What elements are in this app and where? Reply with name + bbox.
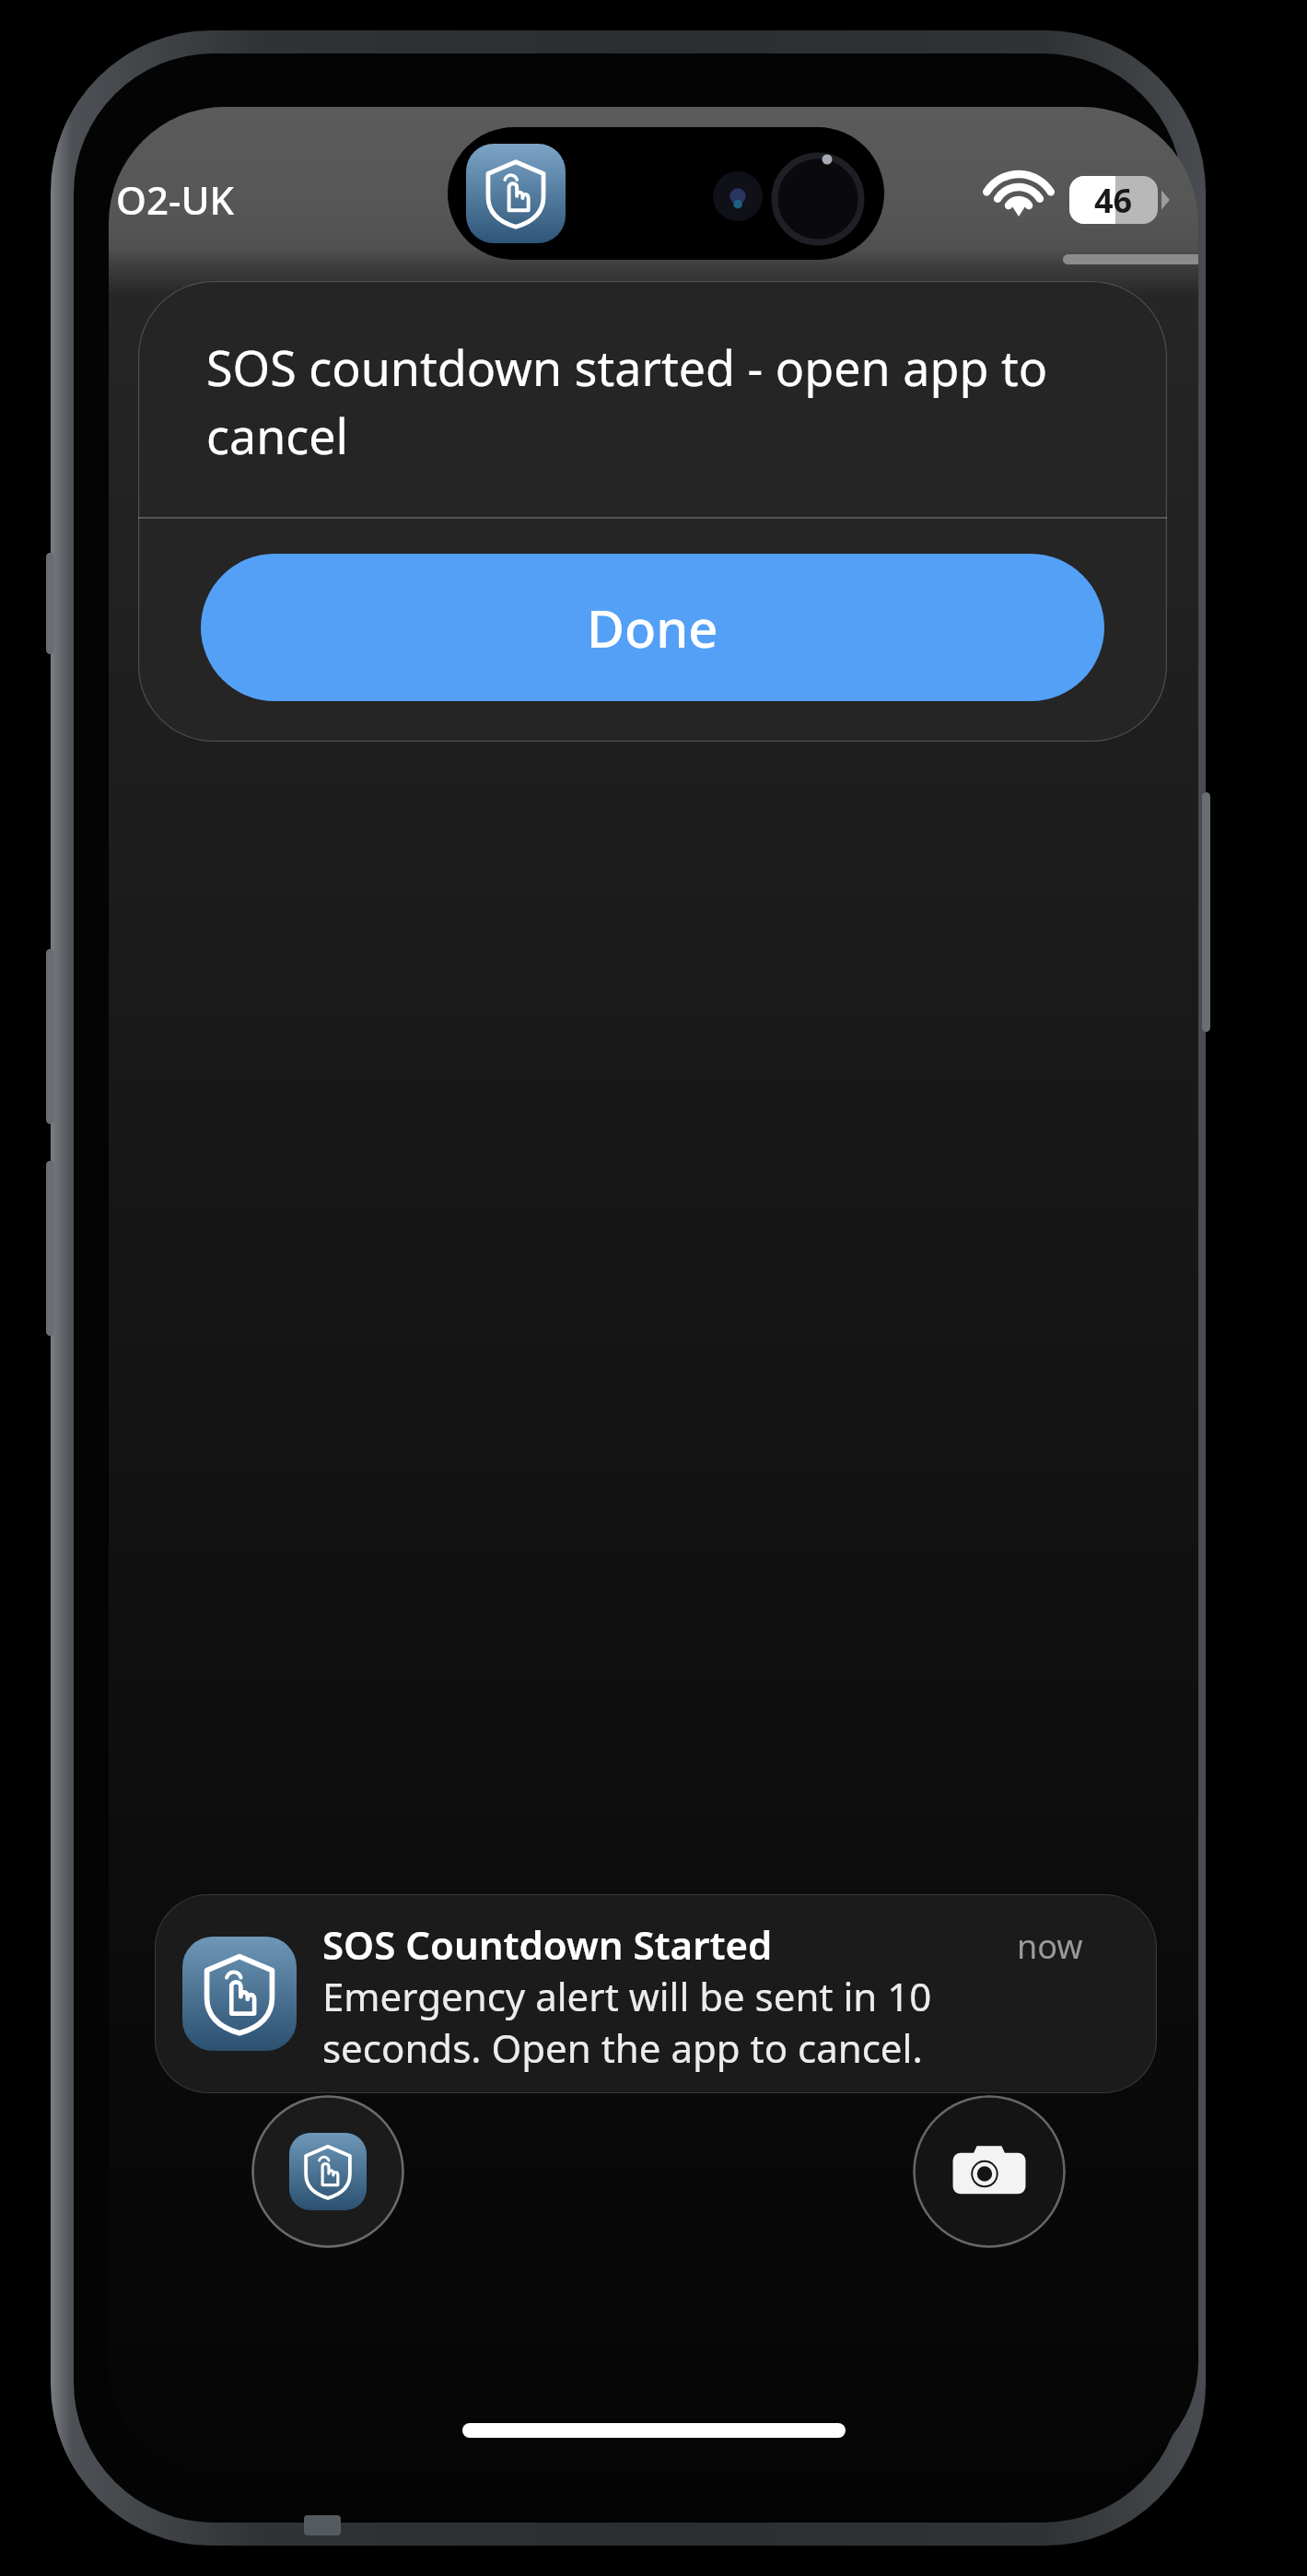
button[interactable]: Done (201, 554, 1104, 701)
button[interactable]: SOS Countdown Started (155, 1894, 1157, 2093)
staticText: now (1017, 1924, 1083, 1969)
staticText: Done (587, 592, 718, 662)
staticText: 46 (1094, 178, 1133, 223)
button[interactable]: Camera (913, 2095, 1066, 2248)
button[interactable]: SOS app shortcut (251, 2095, 404, 2248)
staticText: O2-UK (116, 173, 234, 226)
staticText: SOS countdown started - open app to canc… (206, 334, 1087, 468)
staticText: Emergency alert will be sent in 10 secon… (322, 1970, 1059, 2074)
staticText: SOS Countdown Started (322, 1918, 773, 1971)
